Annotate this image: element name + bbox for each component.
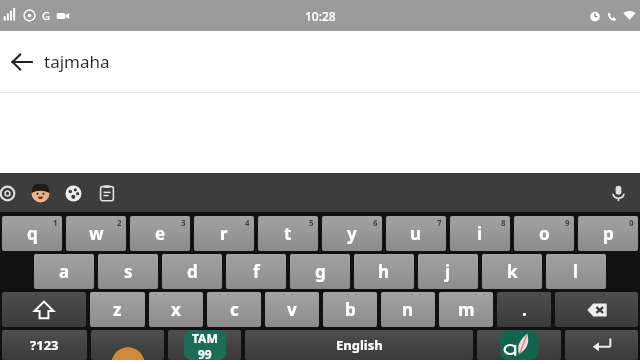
button[interactable]: s (98, 254, 158, 289)
button[interactable]: Shift (2, 292, 86, 327)
button[interactable]: q (2, 216, 62, 251)
staticText: 10:28 (305, 8, 336, 24)
staticText: TAM (192, 330, 218, 346)
staticText: v (287, 298, 297, 321)
button[interactable]: ?123 (2, 330, 87, 360)
staticText: o (539, 222, 550, 245)
button[interactable]: tajmaha (44, 31, 640, 92)
button[interactable]: a (34, 254, 94, 289)
button[interactable]: Theme (58, 178, 88, 208)
staticText: f (253, 260, 260, 283)
button[interactable]: c (207, 292, 261, 327)
button[interactable]: x (149, 292, 203, 327)
staticText: tajmaha (44, 50, 110, 73)
staticText: G (42, 8, 50, 23)
staticText: y (347, 222, 357, 245)
staticText: w (89, 222, 104, 245)
staticText: d (187, 260, 198, 283)
button[interactable]: h (354, 254, 414, 289)
staticText: 1 (53, 217, 58, 228)
button[interactable]: Tamil keyboard (477, 330, 561, 360)
staticText: 0 (629, 217, 634, 228)
staticText: ?123 (30, 336, 59, 354)
staticText: s (124, 260, 133, 283)
button[interactable]: m (439, 292, 493, 327)
button[interactable]: Clipboard (92, 178, 122, 208)
button[interactable]: j (418, 254, 478, 289)
staticText: 9 (565, 217, 570, 228)
button[interactable]: Tamil 99 (168, 330, 241, 360)
staticText: r (220, 222, 228, 245)
button[interactable]: Voice input (603, 178, 633, 208)
button[interactable]: u (386, 216, 446, 251)
staticText: e (155, 222, 166, 245)
staticText: a (59, 260, 70, 283)
staticText: k (507, 260, 518, 283)
button[interactable]: . (497, 292, 551, 327)
staticText: t (284, 222, 292, 245)
staticText: x (171, 298, 181, 321)
staticText: 3 (181, 217, 186, 228)
staticText: . (522, 298, 527, 321)
staticText: l (573, 260, 579, 283)
button[interactable]: Back (0, 40, 44, 84)
staticText: 7 (437, 217, 442, 228)
button[interactable]: Enter (565, 330, 638, 360)
staticText: h (378, 260, 390, 283)
staticText: j (445, 260, 451, 283)
staticText: 99 (198, 346, 212, 360)
button[interactable]: p (578, 216, 638, 251)
staticText: 4 (245, 217, 250, 228)
staticText: 2 (117, 217, 122, 228)
button[interactable]: English (245, 330, 473, 360)
staticText: n (402, 298, 414, 321)
staticText: English (336, 336, 383, 354)
staticText: 6 (373, 217, 378, 228)
button[interactable]: y (322, 216, 382, 251)
button[interactable]: Emoji (25, 178, 55, 208)
staticText: z (113, 298, 122, 321)
button[interactable]: e (130, 216, 190, 251)
staticText: 8 (501, 217, 506, 228)
button[interactable]: Backspace (555, 292, 638, 327)
button[interactable]: o (514, 216, 574, 251)
staticText: i (477, 222, 483, 245)
staticText: p (603, 222, 614, 245)
staticText: u (410, 222, 422, 245)
button[interactable]: Settings (0, 178, 22, 208)
staticText: b (345, 298, 356, 321)
button[interactable]: b (323, 292, 377, 327)
button[interactable]: r (194, 216, 254, 251)
button[interactable]: t (258, 216, 318, 251)
button[interactable]: v (265, 292, 319, 327)
staticText: 5 (309, 217, 314, 228)
button[interactable]: l (546, 254, 606, 289)
staticText: g (315, 260, 326, 283)
button[interactable]: k (482, 254, 542, 289)
button[interactable]: i (450, 216, 510, 251)
button[interactable]: z (90, 292, 145, 327)
button[interactable]: n (381, 292, 435, 327)
button[interactable]: w (66, 216, 126, 251)
button[interactable]: g (290, 254, 350, 289)
button[interactable]: Sticker (91, 330, 164, 360)
button[interactable]: f (226, 254, 286, 289)
staticText: m (458, 298, 475, 321)
staticText: c (230, 298, 239, 321)
button[interactable]: d (162, 254, 222, 289)
staticText: q (27, 222, 38, 245)
